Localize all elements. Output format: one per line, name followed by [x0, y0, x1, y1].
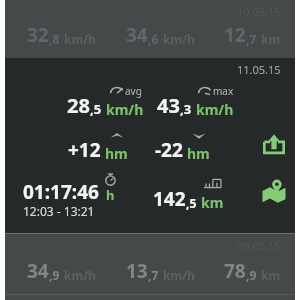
staticText: ,7 — [246, 31, 257, 47]
staticText: max — [213, 84, 234, 98]
button[interactable]: 43 — [157, 84, 234, 119]
staticText: 12:03 - 13:21 — [23, 203, 95, 219]
staticText: km/h — [64, 267, 96, 283]
staticText: km/h — [106, 100, 144, 119]
button[interactable]: +12 — [68, 130, 128, 163]
staticText: ,5 — [90, 100, 102, 118]
staticText: 12 — [224, 22, 246, 48]
staticText: ,7 — [148, 267, 159, 283]
staticText: ,9 — [49, 267, 60, 283]
button[interactable]: 10.05.15 — [5, 0, 295, 58]
staticText: km — [201, 193, 224, 212]
staticText: avg — [125, 84, 142, 98]
staticText: 32 — [27, 22, 49, 48]
staticText: km/h — [163, 31, 195, 47]
staticText: 78 — [224, 258, 246, 284]
staticText: ,8 — [49, 31, 60, 47]
button[interactable]: 11.05.15 — [5, 58, 295, 233]
staticText: 09.05.15 — [237, 238, 281, 253]
staticText: km/h — [196, 100, 234, 119]
staticText: ,5 — [186, 195, 197, 211]
staticText: ,9 — [246, 267, 257, 283]
staticText: -22 — [155, 137, 183, 163]
staticText: 43 — [157, 92, 180, 119]
staticText: 10.05.15 — [237, 4, 281, 19]
staticText: 13 — [126, 258, 148, 284]
button[interactable]: -22 — [155, 130, 210, 163]
button[interactable]: 142 — [153, 176, 224, 212]
staticText: 28 — [67, 92, 90, 119]
staticText: hm — [105, 144, 128, 163]
button[interactable]: 09.05.15 — [5, 234, 295, 294]
staticText: km/h — [64, 31, 96, 47]
staticText: +12 — [68, 137, 101, 163]
staticText: 34 — [27, 258, 49, 284]
button[interactable]: 28 — [67, 84, 144, 119]
staticText: h — [106, 186, 115, 204]
staticText: ,3 — [180, 100, 192, 118]
button[interactable]: Export track — [257, 126, 291, 160]
staticText: 01:17:46 — [23, 179, 99, 205]
button[interactable]: Show map — [257, 174, 291, 208]
staticText: km — [261, 267, 281, 283]
staticText: 34 — [126, 22, 148, 48]
staticText: ,6 — [148, 31, 159, 47]
staticText: km/h — [163, 267, 195, 283]
staticText: km — [261, 31, 281, 47]
staticText: 142 — [153, 186, 186, 212]
staticText: hm — [187, 144, 210, 163]
staticText: 11.05.15 — [237, 62, 281, 77]
